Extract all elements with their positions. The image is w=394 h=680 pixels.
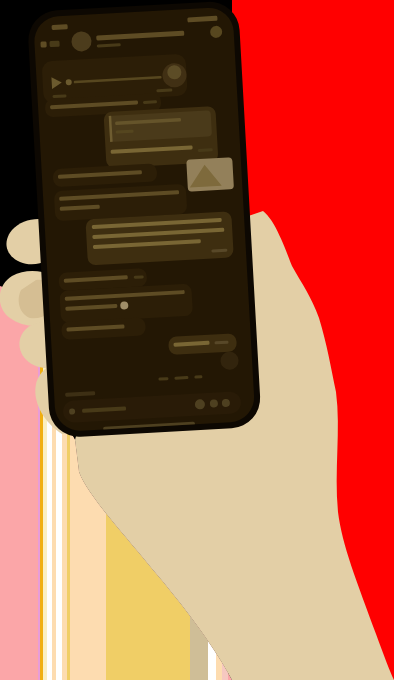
button[interactable] xyxy=(0,0,394,680)
